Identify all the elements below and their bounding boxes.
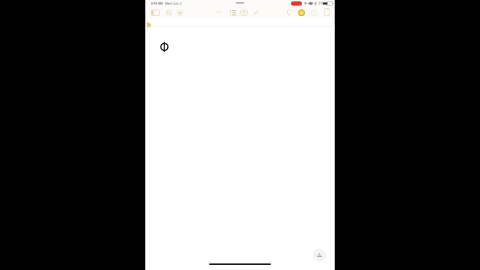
button[interactable]: Page bookmark (147, 19, 152, 28)
button[interactable]: Show sidebar (152, 8, 159, 18)
staticText: Wed Jun 2 (164, 1, 181, 6)
button[interactable]: Shapes (310, 8, 317, 18)
button[interactable]: Bookmarks (176, 8, 183, 18)
button[interactable]: Text box (240, 8, 247, 18)
button[interactable]: Search (165, 8, 172, 18)
button[interactable]: Page navigation (312, 248, 326, 262)
staticText: 81% (318, 1, 324, 5)
button[interactable]: Add page (323, 8, 330, 18)
staticText: 9:41 AM (150, 1, 162, 6)
button[interactable]: Outline (229, 8, 236, 18)
button[interactable]: Undo (216, 8, 223, 18)
button[interactable]: Lasso (286, 8, 293, 18)
button[interactable]: Highlighter (252, 8, 259, 18)
button[interactable]: Pen colour (298, 8, 305, 18)
